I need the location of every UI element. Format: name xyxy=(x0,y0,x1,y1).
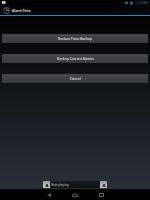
staticText: Now playing xyxy=(51,183,69,187)
button[interactable]: Home xyxy=(62,189,88,200)
button[interactable]: Media control xyxy=(100,181,107,188)
staticText: Restore From Backup xyxy=(58,36,92,41)
button[interactable]: Media control xyxy=(43,181,107,188)
button[interactable]: Restore From Backup xyxy=(2,34,148,43)
button[interactable]: Cancel xyxy=(2,74,148,83)
staticText: 1:24 AM xyxy=(135,0,149,5)
button[interactable]: Media control xyxy=(43,181,50,188)
staticText: Alarm Time xyxy=(12,8,31,13)
button[interactable]: Recent apps xyxy=(88,189,114,200)
button[interactable]: Back xyxy=(36,189,62,200)
staticText: Cancel xyxy=(70,76,81,81)
staticText: Backup Current Alarms xyxy=(57,56,94,61)
button[interactable]: Backup Current Alarms xyxy=(2,54,148,63)
